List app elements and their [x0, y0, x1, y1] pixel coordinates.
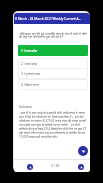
staticText: 3 ) गुजरात राज्य	[21, 72, 41, 76]
staticText: - हाल ही में उत्तर प्रदेश के मुख्यमंत्री…	[19, 111, 89, 139]
button[interactable]: 2 ) मध्य प्रदेश	[18, 58, 88, 69]
staticText: 4 ) बिहार राज्य	[21, 83, 39, 87]
staticText: 2 ) मध्य प्रदेश	[21, 62, 37, 66]
staticText: 1 ) उत्तर प्रदेश	[21, 49, 38, 53]
button[interactable]: 8 March - 24 March 2021 Weekly Current A…	[14, 13, 90, 24]
staticText: Solution	[19, 104, 33, 109]
staticText: 8 March - 24 March 2021 Weekly Current A…	[15, 17, 81, 21]
button[interactable]: Next question	[78, 164, 84, 170]
button[interactable]: 4 ) बिहार राज्य	[18, 79, 88, 90]
button[interactable]: Scroll down	[78, 146, 88, 156]
button[interactable]: 1 ) उत्तर प्रदेश	[18, 45, 88, 56]
staticText: 3 / 20	[51, 164, 60, 168]
button[interactable]: Previous question	[27, 164, 33, 170]
button[interactable]: 3 ) गुजरात राज्य	[18, 68, 88, 79]
staticText: अधिकतम बार की हुई उपलब्धि सेवा के रूप मे…	[19, 31, 88, 39]
